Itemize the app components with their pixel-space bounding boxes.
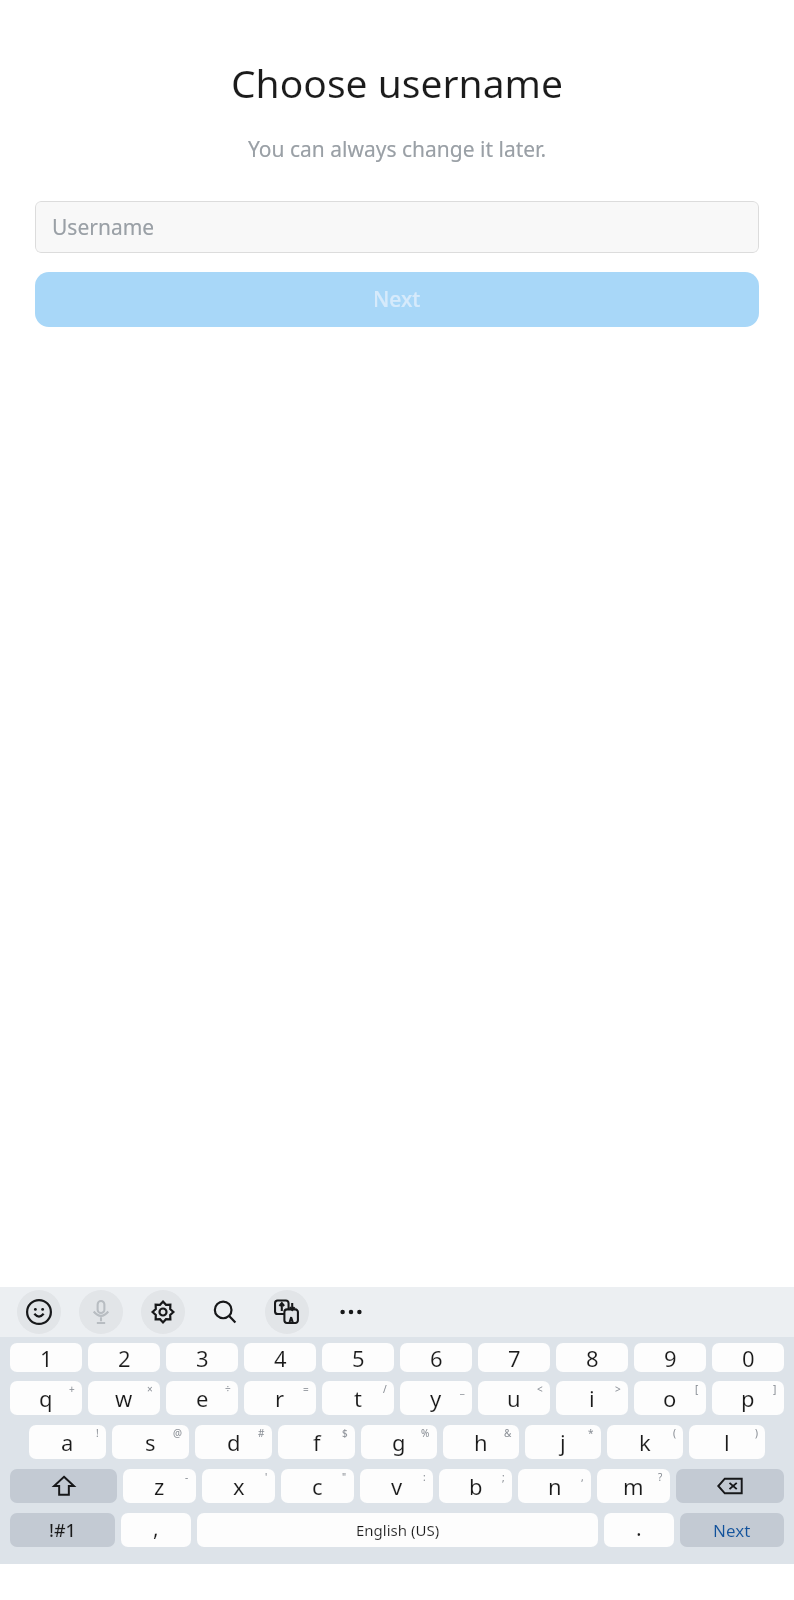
staticText: 9	[664, 1343, 677, 1372]
staticText: ]	[773, 1382, 777, 1396]
button[interactable]: ;	[439, 1469, 512, 1503]
staticText: c	[312, 1471, 323, 1501]
button[interactable]: (	[607, 1425, 683, 1459]
staticText: g	[392, 1427, 406, 1457]
staticText: e	[196, 1383, 209, 1413]
button[interactable]: $	[278, 1425, 355, 1459]
staticText: u	[507, 1383, 521, 1413]
staticText: q	[39, 1383, 53, 1413]
staticText: d	[227, 1427, 241, 1457]
staticText: w	[115, 1383, 133, 1413]
button[interactable]: *	[525, 1425, 601, 1459]
button[interactable]: 6	[400, 1343, 472, 1372]
staticText: _	[460, 1382, 465, 1396]
button[interactable]: ]	[712, 1381, 784, 1415]
staticText: m	[623, 1471, 644, 1501]
staticText: y	[430, 1383, 442, 1413]
button[interactable]: Backspace	[676, 1469, 784, 1503]
button[interactable]: !#1	[10, 1513, 115, 1547]
button[interactable]: Search	[203, 1290, 247, 1334]
button[interactable]: +	[10, 1381, 82, 1415]
staticText: English (US)	[356, 1520, 440, 1540]
staticText: 4	[274, 1343, 287, 1372]
staticText: h	[474, 1427, 488, 1457]
button[interactable]: 7	[478, 1343, 550, 1372]
staticText: t	[354, 1383, 362, 1413]
staticText: Next	[713, 1519, 751, 1542]
staticText: 7	[508, 1343, 521, 1372]
button[interactable]: 8	[556, 1343, 628, 1372]
button[interactable]: 3	[166, 1343, 238, 1372]
button[interactable]: "	[281, 1469, 354, 1503]
staticText: %	[421, 1426, 430, 1440]
button[interactable]: 9	[634, 1343, 706, 1372]
button[interactable]: Next	[35, 272, 759, 327]
button[interactable]: #	[195, 1425, 272, 1459]
button[interactable]: ,	[518, 1469, 591, 1503]
button[interactable]: Translate	[265, 1290, 309, 1334]
button[interactable]: ?	[597, 1469, 670, 1503]
button[interactable]: /	[322, 1381, 394, 1415]
staticText: *	[588, 1426, 594, 1440]
button[interactable]: _	[400, 1381, 472, 1415]
staticText: #	[258, 1426, 265, 1440]
staticText: [	[695, 1382, 699, 1396]
staticText: f	[313, 1427, 321, 1457]
button[interactable]: Next	[680, 1513, 784, 1547]
button[interactable]: !	[29, 1425, 106, 1459]
staticText: b	[469, 1471, 483, 1501]
button[interactable]: More options	[329, 1290, 373, 1334]
staticText: &	[504, 1426, 512, 1440]
staticText: z	[154, 1471, 165, 1501]
button[interactable]: %	[361, 1425, 437, 1459]
button[interactable]: Voice input	[79, 1290, 123, 1334]
button[interactable]: [	[634, 1381, 706, 1415]
button[interactable]: 2	[88, 1343, 160, 1372]
staticText: -	[185, 1470, 189, 1484]
staticText: o	[663, 1383, 677, 1413]
button[interactable]: <	[478, 1381, 550, 1415]
button[interactable]: Username	[35, 201, 759, 253]
staticText: p	[741, 1383, 755, 1413]
button[interactable]: English (US)	[197, 1513, 598, 1547]
button[interactable]: Emoji	[17, 1290, 61, 1334]
button[interactable]: @	[112, 1425, 189, 1459]
button[interactable]: :	[360, 1469, 433, 1503]
staticText: 2	[118, 1343, 131, 1372]
staticText: +	[69, 1382, 75, 1396]
staticText: <	[537, 1382, 543, 1396]
button[interactable]: Settings	[141, 1290, 185, 1334]
staticText: Username	[52, 213, 155, 242]
staticText: v	[391, 1471, 403, 1501]
staticText: You can always change it later.	[0, 135, 794, 164]
button[interactable]: .	[604, 1513, 674, 1547]
staticText: r	[275, 1383, 285, 1413]
staticText: ÷	[225, 1382, 231, 1396]
button[interactable]: 0	[712, 1343, 784, 1372]
button[interactable]: &	[443, 1425, 519, 1459]
staticText: >	[615, 1382, 621, 1396]
staticText: "	[342, 1470, 347, 1484]
staticText: l	[724, 1427, 730, 1457]
staticText: Choose username	[0, 56, 794, 109]
button[interactable]: '	[202, 1469, 275, 1503]
staticText: 3	[196, 1343, 209, 1372]
button[interactable]: 4	[244, 1343, 316, 1372]
staticText: k	[639, 1427, 651, 1457]
staticText: ;	[502, 1470, 505, 1484]
button[interactable]: ×	[88, 1381, 160, 1415]
button[interactable]: Shift	[10, 1469, 117, 1503]
button[interactable]: 1	[10, 1343, 82, 1372]
button[interactable]: ÷	[166, 1381, 238, 1415]
button[interactable]: -	[123, 1469, 196, 1503]
staticText: 5	[352, 1343, 365, 1372]
staticText: 0	[742, 1343, 755, 1372]
button[interactable]: >	[556, 1381, 628, 1415]
button[interactable]: 5	[322, 1343, 394, 1372]
button[interactable]: )	[689, 1425, 765, 1459]
staticText: @	[173, 1426, 182, 1440]
button[interactable]: =	[244, 1381, 316, 1415]
staticText: ?	[658, 1470, 663, 1484]
staticText: /	[383, 1382, 387, 1396]
button[interactable]: ,	[121, 1513, 191, 1547]
